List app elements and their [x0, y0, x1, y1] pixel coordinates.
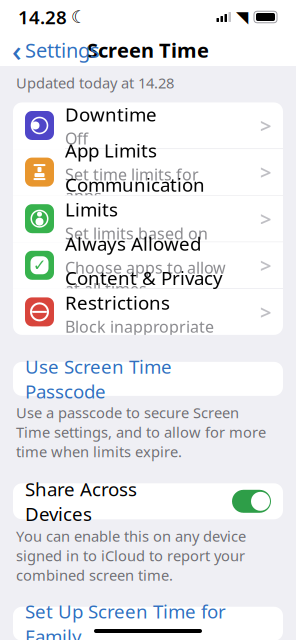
- staticText: Always Allowed: [65, 231, 201, 256]
- staticText: Set time limits for apps.: [65, 164, 199, 206]
- staticText: Downtime: [65, 102, 157, 127]
- button[interactable]: App Limits: [13, 149, 283, 196]
- staticText: >: [260, 299, 271, 325]
- button[interactable]: Downtime: [13, 102, 283, 149]
- staticText: Use a passcode to secure Screen Time set…: [16, 403, 266, 461]
- staticText: Communication Limits: [65, 172, 205, 222]
- button[interactable]: Communication Limits: [13, 196, 283, 242]
- button[interactable]: Share Across Devices: [13, 483, 283, 519]
- staticText: ✓: [33, 256, 46, 274]
- staticText: App Limits: [65, 138, 157, 163]
- staticText: ☾: [71, 7, 87, 27]
- staticText: >: [260, 205, 271, 232]
- staticText: ‹: [12, 30, 22, 69]
- staticText: 14.28: [18, 5, 67, 29]
- staticText: Use Screen Time Passcode: [25, 354, 172, 404]
- staticText: ◥: [236, 8, 248, 26]
- staticText: Share Across Devices: [25, 476, 137, 526]
- staticText: Block inappropriate content.: [65, 316, 214, 358]
- staticText: Content & Privacy Restrictions: [65, 265, 223, 315]
- button[interactable]: Set Up Screen Time for Family: [13, 607, 283, 640]
- staticText: Settings: [25, 37, 100, 63]
- button[interactable]: Use Screen Time Passcode: [13, 362, 283, 396]
- staticText: Choose apps to allow at all times.: [65, 257, 226, 299]
- staticText: Updated today at 14.28: [16, 73, 174, 92]
- button[interactable]: ‹: [4, 35, 108, 65]
- staticText: Set limits based on contacts.: [65, 223, 208, 265]
- staticText: Off: [65, 128, 88, 149]
- staticText: Set Up Screen Time for Family: [25, 599, 226, 640]
- staticText: >: [260, 159, 271, 185]
- staticText: >: [260, 112, 271, 139]
- button[interactable]: ✓: [13, 242, 283, 289]
- staticText: Screen Time: [87, 37, 209, 63]
- button[interactable]: Content & Privacy Restrictions: [13, 289, 283, 335]
- staticText: >: [260, 252, 271, 279]
- staticText: You can enable this on any device signed…: [16, 526, 246, 585]
